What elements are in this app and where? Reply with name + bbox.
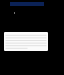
button[interactable] [4, 32, 48, 51]
